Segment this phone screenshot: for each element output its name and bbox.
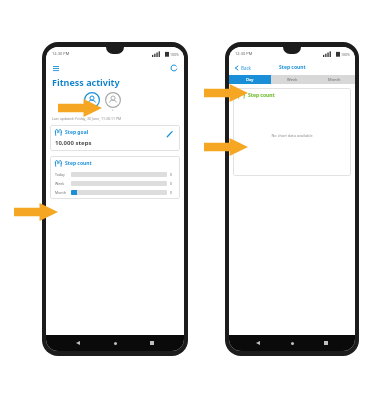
staticText: Step count bbox=[65, 160, 92, 167]
staticText: 10,000 steps bbox=[55, 139, 92, 147]
staticText: Back bbox=[241, 65, 252, 71]
button[interactable]: Add profile bbox=[105, 92, 121, 112]
button[interactable]: Home bbox=[287, 338, 297, 348]
staticText: Step goal bbox=[65, 129, 89, 136]
button[interactable]: Home bbox=[110, 338, 120, 348]
button[interactable]: Step count bbox=[50, 156, 180, 199]
button[interactable]: Menu bbox=[51, 63, 61, 73]
staticText: Step count bbox=[279, 64, 306, 71]
button[interactable]: Recents bbox=[147, 338, 157, 348]
button[interactable]: Day bbox=[229, 75, 271, 84]
staticText: Month bbox=[328, 77, 341, 82]
staticText: 0 bbox=[170, 181, 175, 186]
staticText: 0 bbox=[170, 172, 175, 177]
button[interactable]: Week bbox=[271, 75, 313, 84]
staticText: No chart data available bbox=[271, 133, 313, 138]
staticText: Step count bbox=[248, 92, 275, 99]
staticText: Fitness activity bbox=[52, 76, 120, 88]
staticText: Day bbox=[246, 77, 254, 82]
button[interactable]: Edit step goal bbox=[165, 129, 175, 139]
staticText: Today bbox=[55, 172, 71, 177]
button[interactable]: Recents bbox=[321, 338, 331, 348]
button[interactable]: Profile selected bbox=[84, 92, 100, 112]
button[interactable]: Step count bbox=[233, 88, 351, 176]
staticText: 100% bbox=[341, 52, 350, 57]
staticText: Week bbox=[55, 181, 71, 186]
staticText: Week bbox=[287, 77, 298, 82]
staticText: Month bbox=[55, 190, 71, 195]
button[interactable]: Month bbox=[313, 75, 355, 84]
button[interactable]: Back bbox=[233, 63, 254, 73]
button[interactable]: Refresh bbox=[169, 63, 179, 73]
staticText: Last updated: Friday, 30 June, 11:30:11 … bbox=[52, 116, 122, 121]
button[interactable]: Back bbox=[253, 338, 263, 348]
button[interactable]: Step goal bbox=[50, 125, 180, 151]
staticText: 100% bbox=[170, 52, 179, 57]
button[interactable]: Back bbox=[73, 338, 83, 348]
staticText: 0 bbox=[170, 190, 175, 195]
staticText: Me bbox=[90, 108, 95, 112]
staticText: 12:30 PM bbox=[235, 51, 253, 56]
staticText: + bbox=[112, 108, 114, 112]
staticText: 12:30 PM bbox=[52, 51, 70, 56]
